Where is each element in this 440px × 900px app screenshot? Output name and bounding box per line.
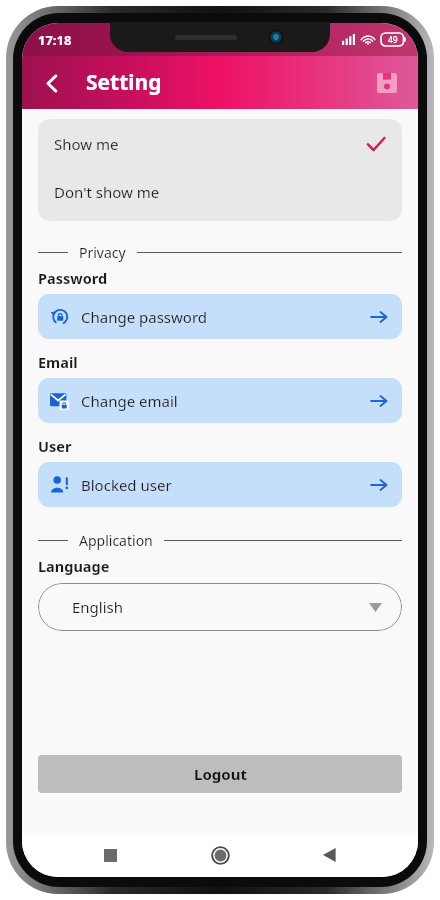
staticText: Don't show me [54,182,160,202]
button[interactable]: Don't show me [38,169,402,215]
button[interactable]: Home [198,833,242,877]
staticText: English [72,597,124,617]
staticText: Blocked user [81,475,172,495]
staticText: Change password [81,307,208,327]
button[interactable]: English [38,583,402,631]
button[interactable]: Logout [38,755,402,793]
staticText: Logout [194,764,247,784]
staticText: Change email [81,391,178,411]
staticText: Email [38,352,78,372]
button[interactable]: Change password [38,294,402,339]
button[interactable]: Recent apps [88,833,132,877]
button[interactable]: Back [308,833,352,877]
staticText: Password [38,268,108,288]
staticText: Setting [86,68,162,97]
button[interactable]: Back [30,61,74,105]
button[interactable]: Show me [38,119,402,169]
staticText: Application [79,531,153,550]
button[interactable]: Blocked user [38,462,402,507]
staticText: 49 [388,34,398,46]
button[interactable]: Save [366,62,408,104]
staticText: Privacy [79,243,126,262]
staticText: User [38,436,72,456]
button[interactable]: Change email [38,378,402,423]
staticText: Language [38,556,110,576]
staticText: Show me [54,134,119,154]
staticText: 17:18 [38,31,72,49]
